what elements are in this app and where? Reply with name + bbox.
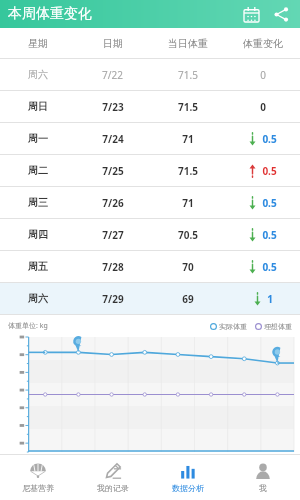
staticText: 71.5 <box>178 100 198 114</box>
staticText: 周五 <box>28 260 48 273</box>
staticText: 周一 <box>28 132 48 145</box>
staticText: 7/26 <box>102 196 124 210</box>
button[interactable]: 我 <box>225 455 300 500</box>
staticText: 我 <box>259 483 267 493</box>
staticText: 70.5 <box>178 228 198 242</box>
staticText: 71.5 <box>178 164 198 178</box>
staticText: 数据分析 <box>172 483 204 493</box>
staticText: 日期 <box>103 37 123 50</box>
staticText: 周六 <box>28 68 48 81</box>
staticText: 周日 <box>28 100 48 113</box>
staticText: 我的记录 <box>97 483 129 493</box>
staticText: 实际体重 <box>219 322 247 331</box>
staticText: 周二 <box>28 164 48 177</box>
button[interactable]: 尼基营养 <box>0 455 75 500</box>
staticText: 周四 <box>28 228 48 241</box>
button[interactable]: 周一 <box>0 123 300 154</box>
staticText: 71 <box>182 132 194 146</box>
button[interactable]: 周五 <box>0 251 300 282</box>
staticText: 星期 <box>28 37 48 50</box>
staticText: 0 <box>260 68 266 82</box>
staticText: 0.5 <box>262 228 277 242</box>
staticText: 70 <box>182 260 194 274</box>
staticText: 0 <box>260 100 266 114</box>
staticText: 0.5 <box>262 260 277 274</box>
staticText: 当日体重 <box>168 37 208 50</box>
staticText: 理想体重 <box>264 322 292 331</box>
staticText: 7/27 <box>102 228 124 242</box>
staticText: 69 <box>182 292 194 306</box>
button[interactable]: 周日 <box>0 91 300 122</box>
staticText: 周六 <box>28 292 48 305</box>
staticText: 7/22 <box>102 68 123 82</box>
button[interactable]: Calendar <box>238 1 264 27</box>
staticText: 0.5 <box>262 164 277 178</box>
staticText: 71.5 <box>178 68 198 82</box>
staticText: 7/23 <box>102 100 124 114</box>
button[interactable]: 周二 <box>0 155 300 186</box>
staticText: 7/29 <box>102 292 124 306</box>
staticText: 7/28 <box>102 260 124 274</box>
button[interactable]: 周六 <box>0 283 300 314</box>
staticText: 1 <box>267 292 273 306</box>
button[interactable]: 理想体重 <box>255 322 292 331</box>
staticText: 0.5 <box>262 196 277 210</box>
staticText: 71 <box>182 196 194 210</box>
button[interactable]: 周四 <box>0 219 300 250</box>
staticText: 7/24 <box>102 132 124 146</box>
staticText: 体重变化 <box>243 37 283 50</box>
staticText: 周三 <box>28 196 48 209</box>
staticText: 0.5 <box>262 132 277 146</box>
button[interactable]: Share <box>268 1 294 27</box>
staticText: 7/25 <box>102 164 124 178</box>
button[interactable]: 周三 <box>0 187 300 218</box>
staticText: 尼基营养 <box>22 483 54 493</box>
staticText: 本周体重变化 <box>8 5 92 23</box>
staticText: 体重单位: kg <box>8 321 48 331</box>
button[interactable]: 我的记录 <box>75 455 150 500</box>
button[interactable]: 周六 <box>0 59 300 90</box>
button[interactable]: 数据分析 <box>150 455 225 500</box>
button[interactable]: 实际体重 <box>210 322 247 331</box>
